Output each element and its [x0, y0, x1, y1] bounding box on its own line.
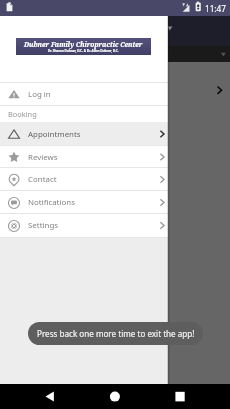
- button[interactable]: Back: [34, 384, 66, 409]
- button[interactable]: Notifications: [0, 191, 168, 214]
- staticText: 11:47: [205, 3, 226, 14]
- staticText: Dubner Family Chiropractic Center: [24, 40, 143, 49]
- staticText: Settings: [28, 220, 156, 231]
- button[interactable]: Reviews: [0, 146, 168, 168]
- button[interactable]: Settings: [0, 214, 168, 237]
- button[interactable]: Home: [99, 384, 131, 409]
- button[interactable]: Log in: [0, 83, 168, 105]
- staticText: Log in: [28, 89, 168, 100]
- staticText: Reviews: [28, 152, 156, 163]
- staticText: Press back one more time to exit the app…: [37, 328, 195, 339]
- button[interactable]: Appointments: [0, 122, 168, 146]
- staticText: Booking: [8, 109, 37, 119]
- staticText: Contact: [28, 174, 156, 185]
- button[interactable]: Recent apps: [164, 384, 196, 409]
- staticText: Notifications: [28, 197, 156, 208]
- button[interactable]: Contact: [0, 168, 168, 191]
- staticText: Dr. Sharon Dubner, D.C. & Dr. Allen Dubn…: [48, 49, 119, 53]
- staticText: Appointments: [28, 129, 156, 140]
